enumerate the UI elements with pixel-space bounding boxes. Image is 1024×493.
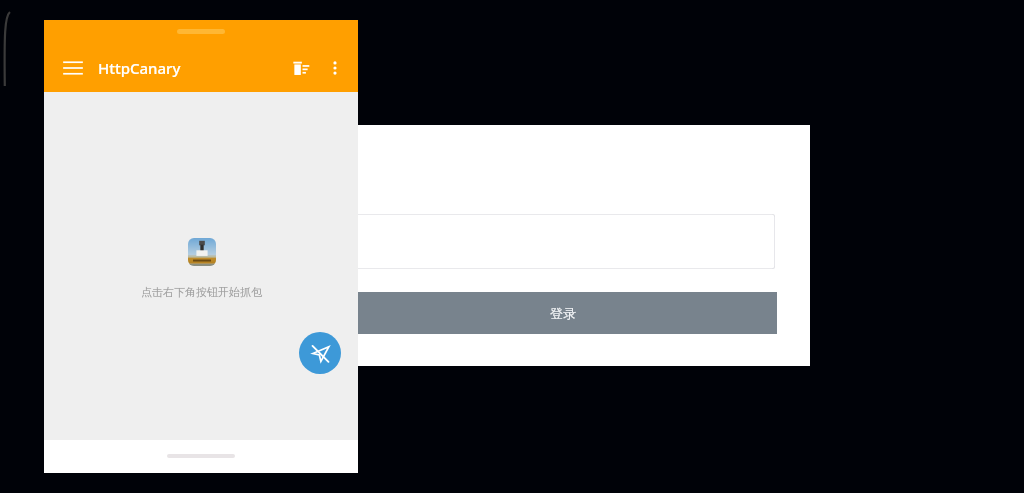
staticText: 点击右下角按钮开始抓包 (141, 285, 262, 299)
staticText: HttpCanary (98, 58, 181, 78)
staticText: 登录 (550, 305, 576, 321)
button[interactable]: Open navigation menu (56, 51, 90, 85)
button[interactable]: 登录 (348, 292, 777, 334)
button[interactable]: Start capture (299, 332, 341, 374)
button[interactable]: Clear all captures (284, 51, 318, 85)
button[interactable]: More options (318, 51, 352, 85)
button[interactable] (348, 214, 775, 269)
